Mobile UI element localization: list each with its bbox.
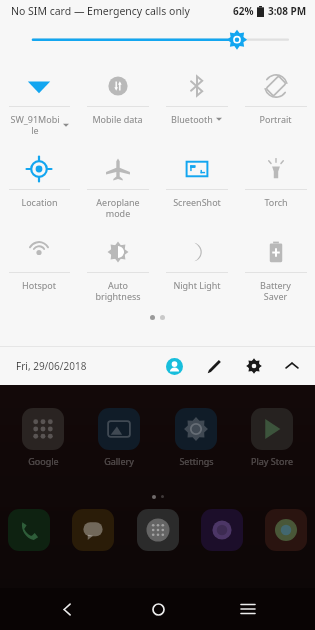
button[interactable]: Play Store — [241, 408, 303, 467]
staticText: Fri, 29/06/2018 — [16, 359, 87, 373]
button[interactable]: Bluetooth — [157, 64, 236, 147]
staticText: Aeroplane mode — [96, 196, 140, 219]
button[interactable]: ScreenShot — [157, 147, 236, 230]
button[interactable]: Battery Saver — [236, 230, 315, 313]
button[interactable]: Location — [0, 147, 78, 230]
button[interactable]: Portrait — [236, 64, 315, 147]
staticText: Mobile data — [92, 113, 143, 125]
button[interactable]: CHAT — [72, 509, 114, 551]
button[interactable]: APPS — [137, 509, 179, 551]
button[interactable]: Back — [44, 588, 90, 630]
button[interactable]: Aeroplane mode — [78, 147, 157, 230]
staticText: Settings — [179, 455, 214, 467]
button[interactable]: User — [157, 349, 191, 383]
button[interactable]: Hotspot — [0, 230, 78, 313]
button[interactable]: CHROME — [265, 509, 307, 551]
button[interactable]: CAMERA — [201, 509, 243, 551]
staticText: Night Light — [173, 279, 221, 291]
staticText: Bluetooth — [171, 113, 213, 125]
button[interactable]: PHONE — [8, 509, 50, 551]
button[interactable]: Recents — [225, 588, 271, 630]
button[interactable]: Edit — [197, 349, 231, 383]
button[interactable]: Home — [135, 588, 181, 630]
button[interactable]: Torch — [236, 147, 315, 230]
staticText: Torch — [264, 196, 288, 208]
staticText: Location — [21, 196, 58, 208]
button[interactable]: SW_91Mobi le — [0, 64, 78, 147]
staticText: Auto brightness — [95, 279, 141, 302]
button[interactable]: Night Light — [157, 230, 236, 313]
staticText: ScreenShot — [173, 196, 221, 208]
staticText: Battery Saver — [260, 279, 291, 302]
staticText: 62% — [233, 4, 254, 18]
button[interactable]: Collapse — [275, 349, 309, 383]
button[interactable]: Settings — [237, 349, 271, 383]
button[interactable]: Mobile data — [78, 64, 157, 147]
staticText: Hotspot — [22, 279, 56, 291]
staticText: SW_91Mobi le — [10, 113, 60, 136]
button[interactable]: Gallery — [88, 408, 150, 467]
staticText: Portrait — [259, 113, 292, 125]
staticText: Google — [28, 455, 59, 467]
button[interactable]: Google — [12, 408, 74, 467]
staticText: No SIM card — Emergency calls only — [11, 4, 190, 18]
staticText: Gallery — [104, 455, 134, 467]
button[interactable]: Brightness — [0, 22, 315, 56]
staticText: 3:08 PM — [268, 4, 307, 18]
staticText: Play Store — [251, 455, 293, 467]
button[interactable]: Settings — [165, 408, 227, 467]
button[interactable]: Auto brightness — [78, 230, 157, 313]
